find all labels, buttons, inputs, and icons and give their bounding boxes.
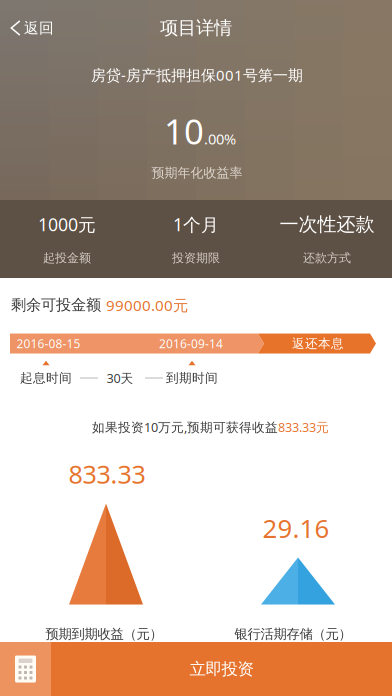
staticText: 返还本息 — [292, 336, 344, 351]
staticText: 立即投资 — [189, 659, 253, 679]
staticText: 剩余可投金额 — [11, 295, 106, 314]
staticText: 还款方式 — [303, 250, 351, 266]
staticText: .00% — [204, 129, 236, 149]
staticText: 99000.00元 — [106, 295, 188, 315]
staticText: 起息时间 — [20, 370, 72, 386]
staticText: 2016-09-14 — [159, 335, 223, 352]
staticText: 一次性还款 — [279, 212, 374, 236]
button[interactable]: 返回 — [0, 6, 70, 50]
staticText: 833.33 — [68, 457, 145, 491]
staticText: 房贷-房产抵押担保001号第一期 — [91, 65, 303, 85]
staticText: 10 — [164, 107, 204, 155]
staticText: 1000元 — [38, 212, 96, 237]
staticText: 2016-08-15 — [16, 335, 80, 352]
staticText: 返回 — [24, 19, 54, 37]
button[interactable]: 立即投资 — [51, 642, 392, 696]
staticText: 30天 — [106, 369, 133, 387]
button[interactable]: 收益计算器 — [0, 642, 51, 696]
staticText: 1个月 — [173, 212, 219, 237]
staticText: 预期年化收益率 — [151, 165, 242, 181]
staticText: 833.33元 — [278, 418, 329, 436]
staticText: 银行活期存储（元） — [234, 626, 351, 642]
staticText: 起投金额 — [43, 250, 91, 266]
staticText: 到期时间 — [166, 370, 218, 386]
staticText: 29.16 — [262, 510, 329, 545]
staticText: 预期到期收益（元） — [45, 626, 162, 642]
staticText: 投资期限 — [172, 250, 220, 266]
staticText: 如果投资10万元,预期可获得收益 — [92, 418, 278, 436]
staticText: 项目详情 — [160, 16, 232, 39]
